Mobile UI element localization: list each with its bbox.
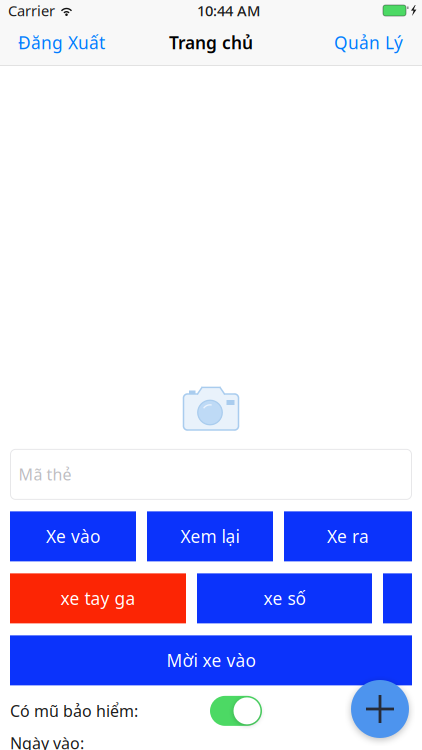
button[interactable]: xe tay ga [10, 573, 186, 623]
staticText: Xem lại [180, 525, 239, 548]
staticText: Trang chủ [169, 31, 253, 54]
button[interactable]: Đăng Xuất [10, 20, 113, 64]
staticText: Mời xe vào [166, 649, 255, 672]
button[interactable]: Có mũ bảo hiểm [210, 695, 262, 726]
staticText: Xe ra [327, 525, 369, 548]
staticText: Carrier [8, 1, 55, 20]
button[interactable]: Mời xe vào [10, 635, 412, 685]
staticText: Ngày vào: [10, 732, 84, 750]
button[interactable]: Xe vào [10, 511, 136, 561]
staticText: xe số [263, 587, 305, 610]
button[interactable]: xe số [197, 573, 372, 623]
staticText: Có mũ bảo hiểm: [10, 700, 138, 721]
staticText: 10:44 AM [197, 1, 260, 20]
button[interactable]: Xe ra [284, 511, 412, 561]
button[interactable]: Quản Lý [326, 20, 411, 64]
staticText: Xe vào [46, 525, 100, 548]
staticText: Mã thẻ [18, 464, 71, 485]
staticText: xe tay ga [60, 587, 135, 610]
button[interactable] [383, 573, 412, 623]
button[interactable]: Thêm [351, 680, 409, 738]
button[interactable]: Xem lại [147, 511, 273, 561]
staticText: Quản Lý [334, 31, 403, 54]
staticText: Đăng Xuất [18, 31, 105, 54]
